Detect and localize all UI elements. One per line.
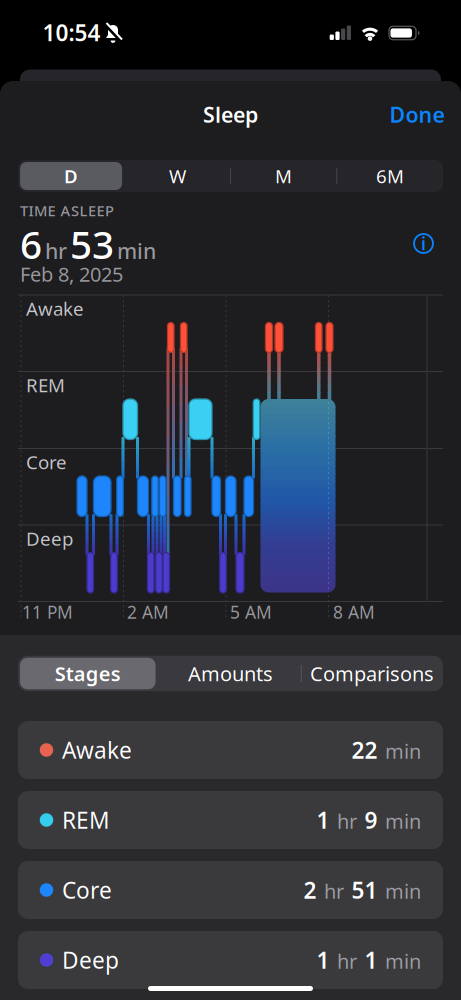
button[interactable]: D [20,162,122,190]
staticText: REM [26,373,65,397]
button[interactable]: Awake [18,721,443,779]
staticText: 1 [316,805,329,835]
staticText: Core [26,450,67,474]
button[interactable]: Core [18,861,443,919]
staticText: Core [62,875,112,905]
staticText: 51 [351,875,377,905]
staticText: 1 [364,945,377,975]
staticText: hr [332,948,362,974]
staticText: Done [389,100,444,129]
staticText: 8 AM [333,600,375,623]
button[interactable]: Done [389,100,444,129]
staticText: 2 AM [127,600,169,623]
staticText: Deep [26,526,73,551]
staticText: 9 [364,805,377,835]
button[interactable]: Stages [20,658,155,689]
staticText: hr [332,808,362,834]
staticText: 5 AM [230,600,272,623]
staticText: TIME ASLEEP [20,201,114,220]
staticText: Deep [62,945,119,975]
button[interactable]: More info [412,232,434,254]
button[interactable]: REM [18,791,443,849]
staticText: Sleep [203,100,258,129]
staticText: min [380,738,421,764]
staticText: Awake [26,296,84,321]
staticText: min [380,948,421,974]
staticText: hr [45,237,67,265]
button[interactable]: Comparisons [305,658,440,689]
staticText: 2 [303,875,316,905]
button[interactable]: Deep [18,931,443,989]
staticText: 11 PM [22,600,73,623]
staticText: W [169,164,186,188]
staticText: 53 [70,218,114,270]
staticText: 10:54 [42,17,100,47]
staticText: Comparisons [310,660,434,687]
staticText: min [380,878,421,904]
staticText: Amounts [188,660,273,687]
staticText: min [117,237,156,265]
staticText: D [64,164,78,188]
staticText: M [275,164,292,188]
staticText: Awake [62,735,132,765]
staticText: min [380,808,421,834]
staticText: 22 [351,735,377,765]
button[interactable]: M [233,162,335,190]
staticText: Stages [55,660,121,687]
staticText: REM [62,805,110,835]
staticText: 6M [376,164,404,188]
button[interactable]: 6M [339,162,441,190]
button[interactable]: W [126,162,228,190]
staticText: 6 [20,218,42,270]
staticText: 1 [316,945,329,975]
staticText: Feb 8, 2025 [20,261,123,287]
staticText: i [421,232,426,255]
staticText: hr [319,878,349,904]
button[interactable]: Amounts [163,658,298,689]
